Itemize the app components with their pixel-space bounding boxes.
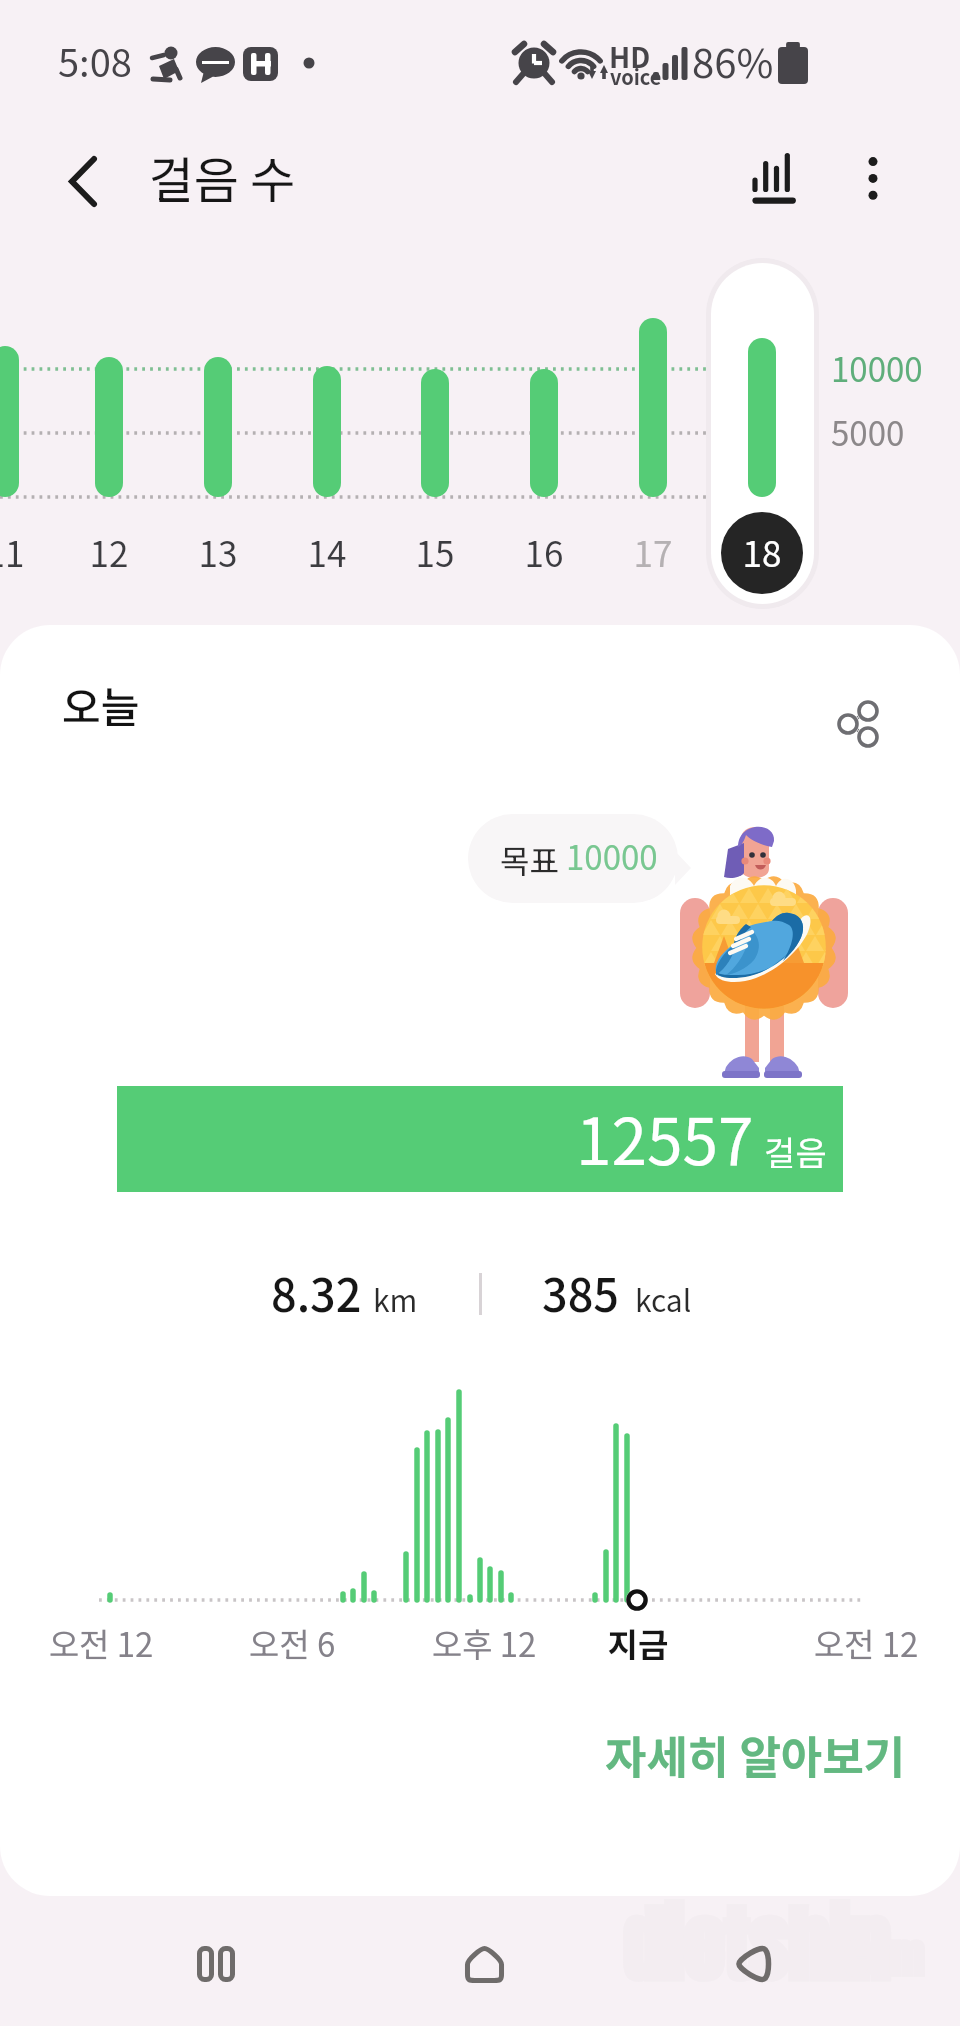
staticText: dietshin (622, 1884, 890, 2007)
staticText: 10000 (831, 344, 923, 392)
staticText: 5000 (831, 408, 905, 456)
staticText: 12 (69, 526, 149, 577)
staticText: 자세히 알아보기 (605, 1722, 906, 1787)
staticText: 11 (0, 526, 45, 577)
staticText: 14 (287, 526, 367, 577)
staticText: 15 (395, 526, 475, 577)
staticText: 오전 12 (1, 1619, 201, 1667)
staticText: 8.32 (271, 1260, 362, 1325)
button[interactable]: Share (812, 678, 904, 770)
staticText: 16 (504, 526, 584, 577)
staticText: 86% (692, 32, 774, 90)
button[interactable]: Recent apps (156, 1904, 276, 2024)
staticText: 385 (542, 1260, 619, 1325)
button[interactable]: More options (821, 126, 925, 230)
button[interactable]: Back (28, 126, 138, 236)
button[interactable]: Home (424, 1904, 544, 2024)
staticText: 오전 12 (766, 1619, 960, 1667)
staticText: km (373, 1277, 418, 1320)
button[interactable]: Back (693, 1904, 813, 2024)
staticText: HD (609, 36, 651, 77)
staticText: 오후 12 (384, 1619, 584, 1667)
staticText: 13 (178, 526, 258, 577)
staticText: voice (610, 62, 662, 91)
staticText: 18 (722, 526, 802, 577)
staticText: kcal (635, 1277, 692, 1320)
staticText: 오전 6 (192, 1619, 392, 1667)
staticText: 걸음 수 (149, 141, 296, 212)
staticText: 12557 (576, 1091, 754, 1184)
staticText: 걸음 (764, 1127, 827, 1176)
button[interactable]: 자세히 알아보기 (585, 1702, 926, 1807)
staticText: 5:08 (58, 33, 132, 88)
staticText: 17 (613, 526, 693, 577)
staticText: 오늘 (62, 674, 140, 735)
button[interactable]: Chart (719, 126, 823, 230)
staticText: 10000 (566, 832, 658, 880)
staticText: 목표 (500, 836, 559, 882)
staticText: 지금 (538, 1619, 738, 1667)
